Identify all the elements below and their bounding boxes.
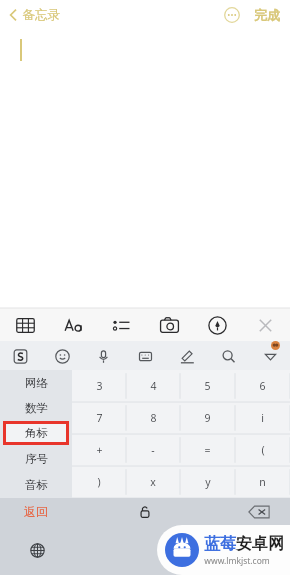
button[interactable]: +: [72, 434, 126, 466]
button[interactable]: 网络: [0, 370, 72, 395]
button[interactable]: Close keyboard: [250, 311, 280, 339]
staticText: (: [261, 443, 265, 457]
staticText: 蓝莓: [204, 534, 236, 554]
button[interactable]: x: [126, 466, 180, 498]
button[interactable]: Handwriting: [173, 343, 201, 369]
button[interactable]: 8: [126, 402, 180, 434]
button[interactable]: Search: [214, 343, 242, 369]
staticText: 3: [96, 379, 103, 393]
button[interactable]: =: [180, 434, 235, 466]
staticText: 角标: [25, 426, 48, 440]
button[interactable]: 序号: [0, 446, 72, 472]
button[interactable]: 完成: [252, 4, 282, 26]
staticText: 备忘录: [22, 7, 60, 23]
staticText: 8: [150, 411, 157, 425]
staticText: 完成: [254, 7, 280, 23]
button[interactable]: Voice input: [89, 343, 117, 369]
button[interactable]: Switch language: [22, 535, 52, 565]
button[interactable]: Emoji: [48, 343, 76, 369]
staticText: -: [151, 443, 155, 457]
button[interactable]: 数学: [0, 395, 72, 420]
button[interactable]: More: [256, 343, 284, 369]
button[interactable]: 返回: [0, 498, 72, 525]
staticText: 9: [204, 411, 211, 425]
staticText: 4: [150, 379, 157, 393]
button[interactable]: 5: [180, 370, 235, 402]
staticText: 网络: [25, 376, 48, 390]
staticText: y: [205, 475, 211, 489]
button[interactable]: Insert table: [10, 311, 40, 339]
button[interactable]: 备忘录: [6, 4, 63, 26]
button[interactable]: (: [235, 434, 290, 466]
staticText: 返回: [24, 504, 48, 519]
button[interactable]: 7: [72, 402, 126, 434]
staticText: ): [97, 475, 101, 489]
button[interactable]: Keyboard layout: [131, 343, 159, 369]
staticText: 音标: [25, 478, 48, 492]
button[interactable]: Backspace: [242, 501, 276, 523]
button[interactable]: i: [235, 402, 290, 434]
button[interactable]: y: [180, 466, 235, 498]
staticText: +: [96, 443, 103, 457]
button[interactable]: Sogou input: [6, 343, 34, 369]
button[interactable]: 角标: [0, 420, 72, 446]
button[interactable]: -: [126, 434, 180, 466]
staticText: n: [259, 475, 266, 489]
button[interactable]: Lock symbols: [130, 498, 160, 525]
staticText: =: [204, 443, 211, 457]
staticText: i: [261, 411, 264, 425]
button[interactable]: ): [72, 466, 126, 498]
button[interactable]: 9: [180, 402, 235, 434]
button[interactable]: 4: [126, 370, 180, 402]
staticText: 6: [259, 379, 266, 393]
staticText: 7: [96, 411, 103, 425]
button[interactable]: Checklist: [106, 311, 136, 339]
staticText: www.lmkjst.com: [204, 555, 270, 567]
button[interactable]: Text format: [58, 311, 88, 339]
button[interactable]: 6: [235, 370, 290, 402]
button[interactable]: 3: [72, 370, 126, 402]
button[interactable]: Markup: [202, 311, 232, 339]
staticText: x: [150, 475, 156, 489]
button[interactable]: More options: [222, 5, 242, 25]
button[interactable]: Camera: [154, 311, 184, 339]
staticText: 序号: [25, 452, 48, 466]
staticText: 5: [204, 379, 211, 393]
staticText: 安卓网: [236, 534, 284, 554]
button[interactable]: n: [235, 466, 290, 498]
staticText: 数学: [25, 401, 48, 415]
button[interactable]: 音标: [0, 472, 72, 498]
